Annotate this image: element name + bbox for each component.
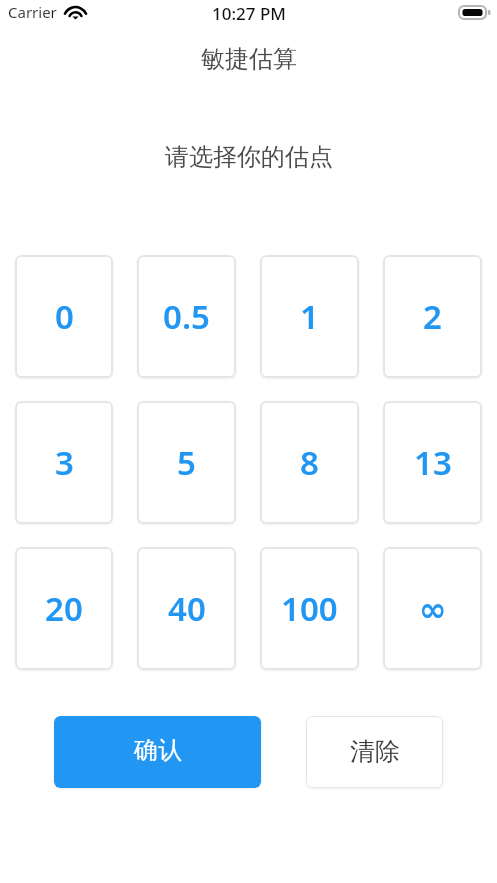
staticText: 0 [55, 294, 74, 339]
staticText: 清除 [350, 736, 400, 767]
staticText: 1 [300, 294, 319, 339]
button[interactable]: 3 [15, 401, 113, 524]
button[interactable]: 0 [15, 255, 113, 378]
staticText: 3 [55, 440, 74, 485]
button[interactable]: 0.5 [137, 255, 236, 378]
button[interactable]: 确认 [54, 716, 261, 788]
staticText: 40 [168, 586, 206, 631]
staticText: 20 [45, 586, 83, 631]
button[interactable]: 20 [15, 547, 113, 670]
staticText: 10:27 PM [212, 2, 286, 25]
button[interactable]: 40 [137, 547, 236, 670]
staticText: 8 [300, 440, 319, 485]
staticText: 5 [177, 440, 196, 485]
button[interactable]: 13 [383, 401, 482, 524]
staticText: 确认 [134, 735, 182, 765]
other: Battery [458, 5, 490, 20]
staticText: 请选择你的估点 [165, 142, 333, 172]
staticText: Carrier [8, 2, 57, 22]
button[interactable]: 1 [260, 255, 359, 378]
button[interactable]: 5 [137, 401, 236, 524]
button[interactable]: 100 [260, 547, 359, 670]
button[interactable]: 2 [383, 255, 482, 378]
button[interactable]: ∞ [383, 547, 482, 670]
staticText: 13 [414, 440, 452, 485]
staticText: 2 [423, 294, 442, 339]
staticText: 0.5 [163, 294, 210, 339]
staticText: 100 [281, 586, 338, 631]
button[interactable]: 8 [260, 401, 359, 524]
button[interactable]: 清除 [306, 716, 443, 788]
staticText: 敏捷估算 [201, 44, 297, 74]
staticText: ∞ [419, 590, 447, 628]
other: Wi-Fi [66, 5, 85, 19]
